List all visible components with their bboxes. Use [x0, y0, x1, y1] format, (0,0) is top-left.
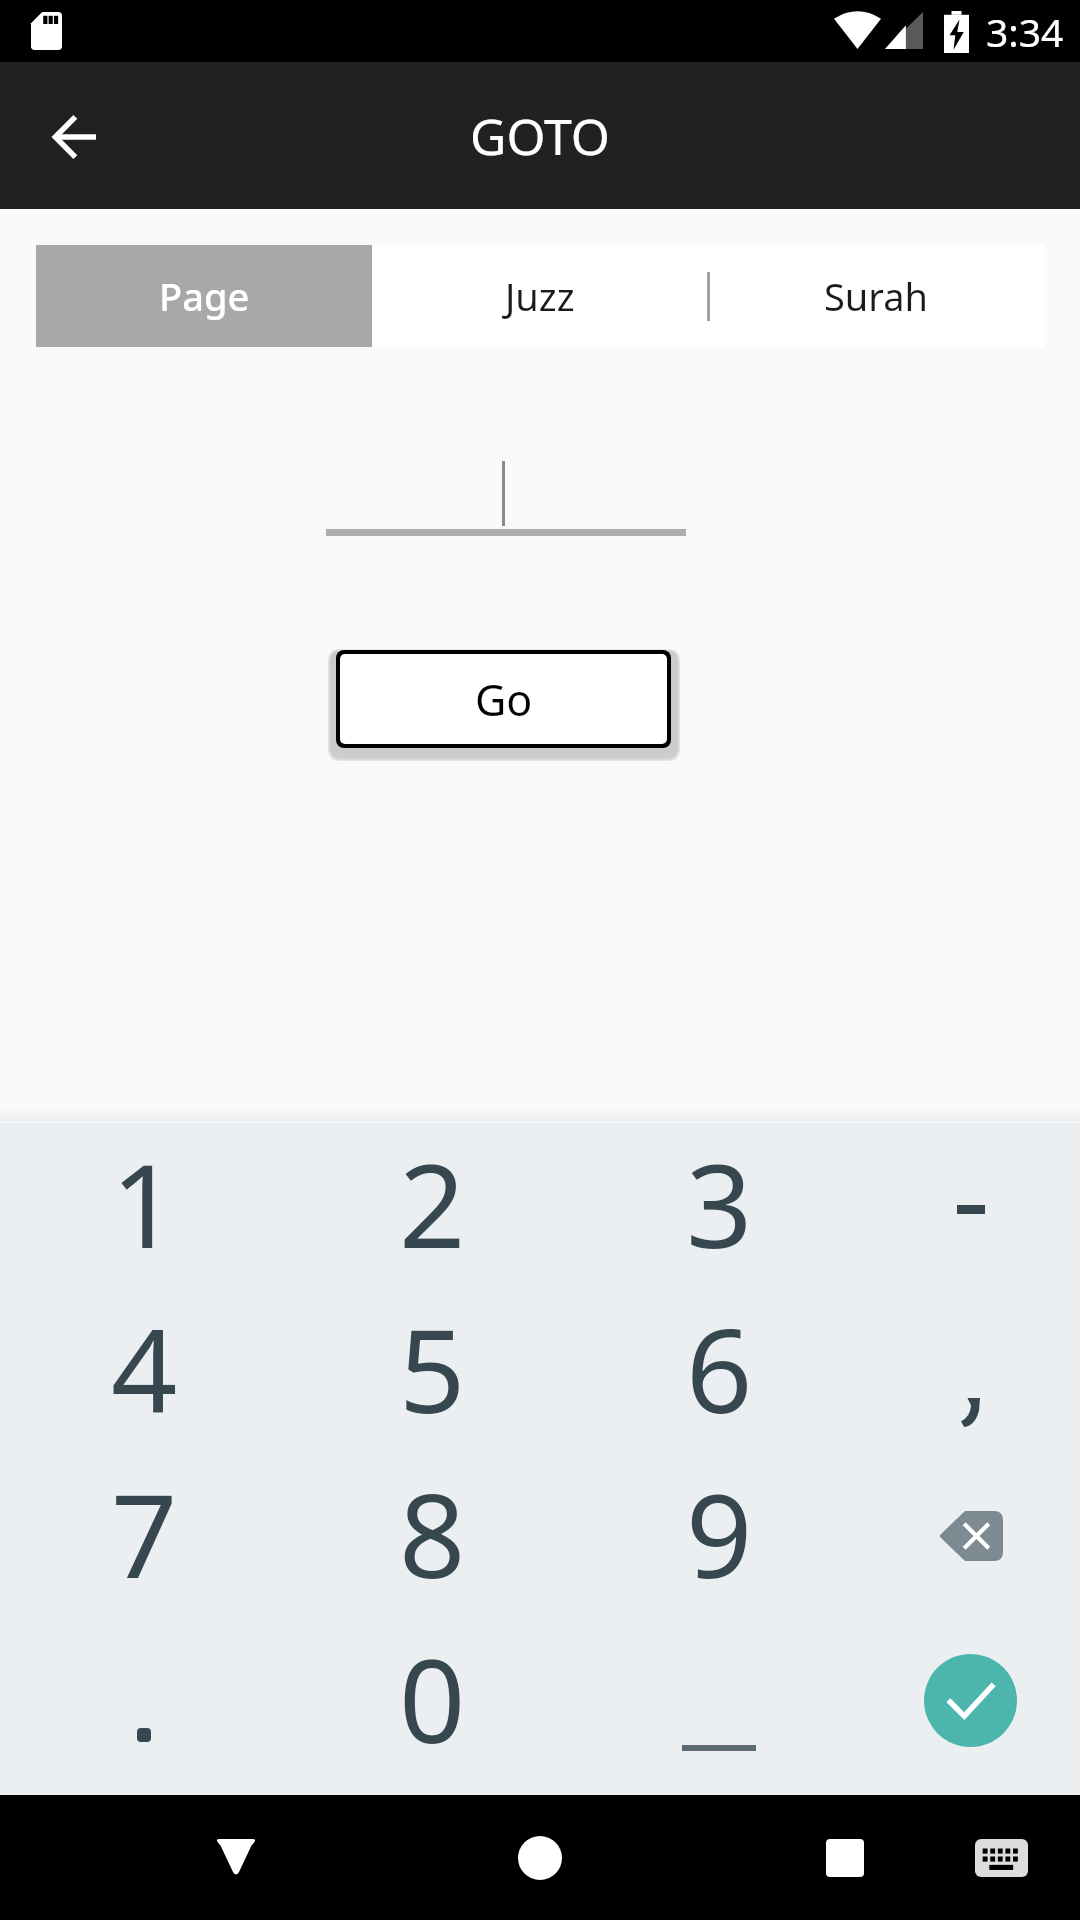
button[interactable]: 9	[577, 1453, 861, 1618]
staticText: 6	[686, 1289, 753, 1447]
button[interactable]: 1	[0, 1123, 288, 1288]
button[interactable]: Home	[490, 1808, 590, 1908]
button[interactable]: Period	[0, 1618, 288, 1783]
button[interactable]: Minus	[861, 1123, 1080, 1288]
button[interactable]: Backspace	[861, 1453, 1080, 1618]
staticText: 9	[686, 1454, 753, 1612]
button[interactable]: Done	[861, 1618, 1080, 1783]
button[interactable]: Back	[26, 89, 122, 185]
button[interactable]: 4	[0, 1288, 288, 1453]
staticText: 2	[399, 1124, 466, 1282]
button[interactable]: 3	[577, 1123, 861, 1288]
staticText: 0	[399, 1619, 466, 1777]
button[interactable]: Comma	[861, 1288, 1080, 1453]
button[interactable]: Switch keyboard	[951, 1808, 1051, 1908]
staticText: 3	[686, 1124, 753, 1282]
button[interactable]: 2	[288, 1123, 577, 1288]
staticText: 3:34	[986, 5, 1064, 58]
staticText: GOTO	[470, 102, 610, 170]
staticText: 7	[111, 1454, 178, 1612]
staticText: Page	[159, 270, 250, 322]
button[interactable]: 5	[288, 1288, 577, 1453]
button[interactable]: Go	[340, 654, 667, 744]
staticText: 1	[111, 1124, 178, 1282]
staticText: 8	[399, 1454, 466, 1612]
button[interactable]: 0	[288, 1618, 577, 1783]
button[interactable]: Recent apps	[795, 1808, 895, 1908]
button[interactable]: Page	[36, 245, 372, 347]
button[interactable]: 6	[577, 1288, 861, 1453]
button[interactable]: Underscore	[577, 1618, 861, 1783]
staticText: Surah	[824, 270, 929, 322]
staticText: Juzz	[505, 270, 575, 322]
staticText: 5	[399, 1289, 466, 1447]
staticText: Go	[475, 670, 533, 729]
button[interactable]: Surah	[708, 245, 1044, 347]
button[interactable]: Page number input	[326, 451, 686, 536]
staticText: 4	[111, 1289, 178, 1447]
button[interactable]: Back	[186, 1808, 286, 1908]
button[interactable]: 8	[288, 1453, 577, 1618]
button[interactable]: Juzz	[372, 245, 708, 347]
button[interactable]: 7	[0, 1453, 288, 1618]
